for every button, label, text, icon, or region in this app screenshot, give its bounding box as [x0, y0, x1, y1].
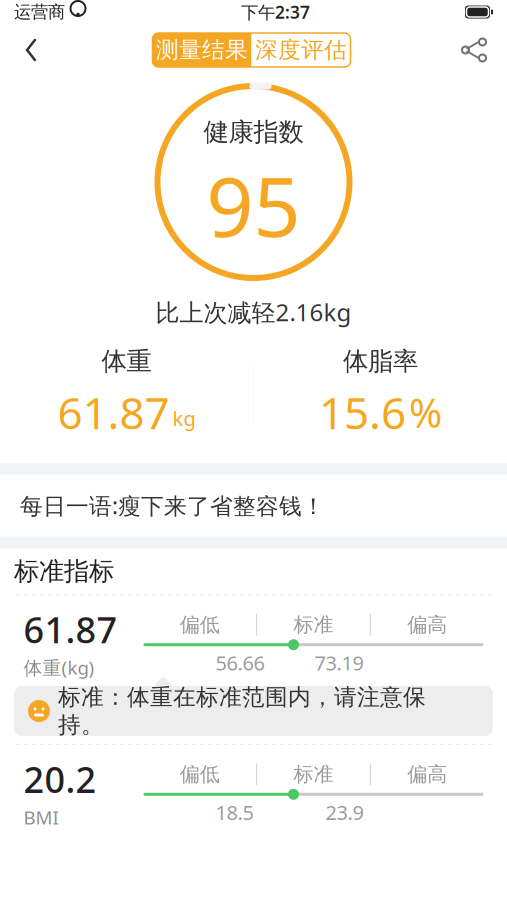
- staticText: 每日一语:瘦下来了省整容钱！: [20, 490, 325, 520]
- staticText: 健康指数: [203, 117, 303, 148]
- staticText: 61.87: [23, 605, 117, 653]
- staticText: 73.19: [314, 649, 363, 676]
- staticText: 95: [206, 150, 300, 259]
- staticText: BMI: [23, 805, 58, 830]
- staticText: 标准: [293, 612, 333, 637]
- staticText: 20.2: [23, 755, 96, 803]
- staticText: 下午2:37: [241, 0, 310, 23]
- staticText: 深度评估: [255, 36, 347, 64]
- staticText: 体脂率: [343, 346, 418, 377]
- staticText: 比上次减轻2.16kg: [155, 296, 351, 328]
- staticText: 体重: [101, 346, 151, 377]
- staticText: kg: [172, 405, 195, 431]
- staticText: 56.66: [215, 649, 264, 676]
- staticText: 标准指标: [14, 556, 114, 587]
- button[interactable]: 测量结果: [152, 33, 251, 67]
- staticText: 18.5: [215, 799, 253, 826]
- staticText: 61.87: [57, 383, 169, 441]
- staticText: 偏高: [407, 612, 447, 637]
- staticText: 偏低: [180, 612, 220, 637]
- staticText: 运营商: [14, 1, 65, 23]
- staticText: 标准: [293, 762, 333, 787]
- button[interactable]: Share: [461, 37, 487, 63]
- staticText: 偏高: [407, 762, 447, 787]
- button[interactable]: Back: [20, 36, 42, 64]
- staticText: 标准：体重在标准范围内，请注意保持。: [58, 683, 426, 739]
- staticText: 15.6: [319, 383, 406, 441]
- button[interactable]: 深度评估: [251, 33, 350, 67]
- staticText: 23.9: [325, 799, 363, 826]
- staticText: 测量结果: [156, 36, 248, 64]
- staticText: 偏低: [180, 762, 220, 787]
- staticText: %: [409, 386, 442, 439]
- staticText: 体重(kg): [23, 655, 94, 680]
